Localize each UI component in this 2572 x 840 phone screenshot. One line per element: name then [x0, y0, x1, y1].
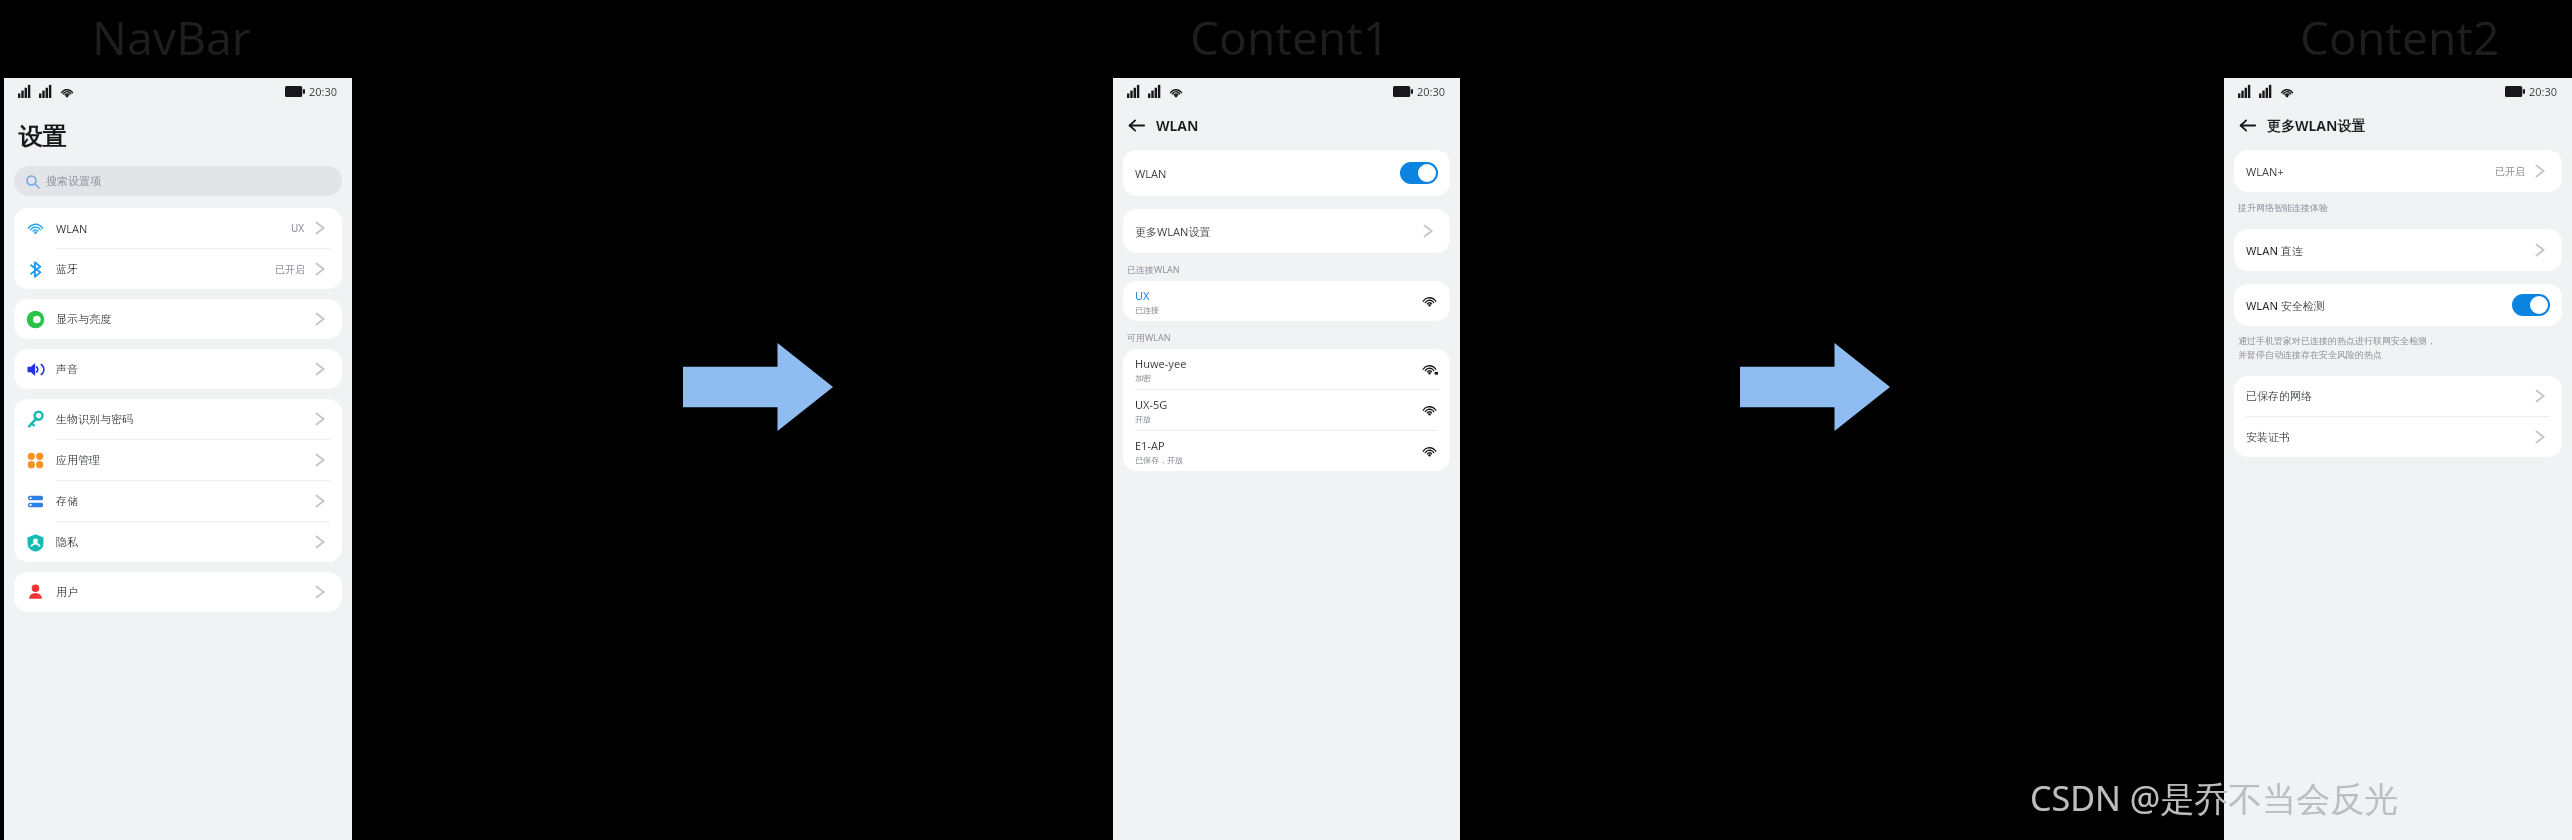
button[interactable]: WLAN	[14, 208, 342, 248]
staticText: WLAN 安全检测	[2246, 298, 2325, 313]
staticText: WLAN	[1135, 166, 1167, 181]
staticText: 可用WLAN	[1127, 331, 1171, 343]
staticText: WLAN+	[2246, 164, 2284, 179]
button[interactable]: WLAN 直连	[2234, 229, 2562, 271]
staticText: CSDN @是乔不当会反光	[2030, 775, 2399, 821]
button[interactable]: 搜索设置项	[14, 166, 342, 196]
button[interactable]: 应用管理	[14, 440, 342, 480]
button[interactable]: 声音	[14, 349, 342, 389]
button[interactable]: 生物识别与密码	[14, 399, 342, 439]
staticText: 安装证书	[2246, 430, 2290, 444]
staticText: 更多WLAN设置	[1135, 224, 1211, 239]
staticText: 隐私	[56, 535, 78, 549]
staticText: Huwe-yee	[1135, 356, 1187, 371]
button[interactable]: 隐私	[14, 522, 342, 562]
staticText: 已保存，开放	[1135, 455, 1183, 465]
button[interactable]: 蓝牙	[14, 249, 342, 289]
staticText: WLAN 直连	[2246, 243, 2303, 258]
staticText: 开放	[1135, 414, 1151, 424]
button[interactable]: Back	[2236, 114, 2258, 136]
staticText: UX-5G	[1135, 397, 1168, 412]
staticText: 20:30	[309, 84, 338, 99]
staticText: 生物识别与密码	[56, 412, 133, 426]
button[interactable]: 存储	[14, 481, 342, 521]
button[interactable]: WLAN+	[2234, 150, 2562, 192]
staticText: 20:30	[1417, 84, 1446, 99]
button[interactable]: E1-AP	[1123, 431, 1450, 471]
button[interactable]: UX-5G	[1123, 390, 1450, 430]
button[interactable]: 安装证书	[2234, 417, 2562, 457]
staticText: NavBar	[92, 6, 251, 69]
staticText: Content2	[2300, 6, 2500, 69]
staticText: 加密	[1135, 373, 1151, 383]
staticText: 提升网络智能连接体验	[2238, 202, 2328, 213]
staticText: 显示与亮度	[56, 312, 111, 326]
staticText: 已开启	[2495, 165, 2525, 178]
staticText: UX	[1135, 288, 1150, 303]
staticText: 应用管理	[56, 453, 100, 467]
button[interactable]: Toggle	[2512, 294, 2550, 316]
staticText: UX	[291, 221, 305, 235]
button[interactable]: WLAN 安全检测	[2234, 284, 2562, 326]
staticText: 已连接	[1135, 305, 1159, 315]
button[interactable]: Back	[1125, 114, 1147, 136]
button[interactable]: UX	[1123, 281, 1450, 321]
staticText: 用户	[56, 585, 78, 599]
staticText: 更多WLAN设置	[2267, 116, 2366, 135]
staticText: 20:30	[2529, 84, 2558, 99]
staticText: WLAN	[56, 221, 88, 236]
button[interactable]: Huwe-yee	[1123, 349, 1450, 389]
staticText: 通过手机管家对已连接的热点进行联网安全检测，	[2238, 335, 2436, 346]
staticText: 存储	[56, 494, 78, 508]
staticText: Content1	[1190, 6, 1390, 69]
button[interactable]: 已保存的网络	[2234, 376, 2562, 416]
staticText: 已保存的网络	[2246, 389, 2312, 403]
staticText: 并暂停自动连接存在安全风险的热点	[2238, 349, 2382, 360]
staticText: 已连接WLAN	[1127, 263, 1180, 275]
button[interactable]: 用户	[14, 572, 342, 612]
staticText: 声音	[56, 362, 78, 376]
staticText: 设置	[18, 122, 66, 152]
staticText: 蓝牙	[56, 262, 78, 276]
staticText: E1-AP	[1135, 438, 1165, 453]
button[interactable]: Toggle	[1400, 162, 1438, 184]
staticText: 已开启	[275, 263, 305, 276]
button[interactable]: 显示与亮度	[14, 299, 342, 339]
staticText: WLAN	[1156, 116, 1199, 135]
button[interactable]: 更多WLAN设置	[1123, 209, 1450, 253]
staticText: 搜索设置项	[46, 174, 101, 188]
button[interactable]: WLAN	[1123, 150, 1450, 196]
